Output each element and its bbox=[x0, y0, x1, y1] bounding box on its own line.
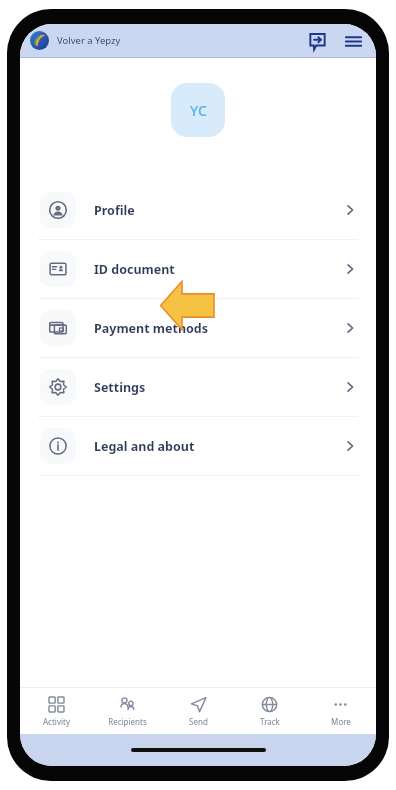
staticText: Send bbox=[189, 716, 208, 727]
button[interactable]: Activity bbox=[20, 688, 92, 734]
button[interactable]: Send bbox=[163, 688, 234, 734]
staticText: Profile bbox=[94, 202, 135, 219]
button[interactable]: Messages bbox=[304, 28, 330, 54]
button[interactable]: Menu bbox=[340, 28, 366, 54]
staticText: Track bbox=[260, 716, 280, 727]
button[interactable]: ID document bbox=[38, 240, 358, 298]
staticText: Recipients bbox=[108, 716, 147, 727]
button[interactable]: Legal and about bbox=[38, 417, 358, 475]
button[interactable]: Profile bbox=[38, 181, 358, 239]
staticText: Volver a Yepzy bbox=[57, 34, 121, 47]
staticText: Settings bbox=[94, 379, 146, 396]
button[interactable]: Settings bbox=[38, 358, 358, 416]
button[interactable]: More bbox=[305, 688, 376, 734]
staticText: Activity bbox=[43, 716, 70, 727]
staticText: Legal and about bbox=[94, 438, 195, 455]
button[interactable]: Track bbox=[234, 688, 305, 734]
staticText: YC bbox=[190, 101, 207, 120]
button[interactable]: Yepzy logo bbox=[30, 31, 49, 50]
staticText: ID document bbox=[94, 261, 175, 278]
button[interactable]: Payment methods bbox=[38, 299, 358, 357]
button[interactable]: YC bbox=[171, 83, 225, 137]
staticText: More bbox=[331, 716, 351, 727]
button[interactable]: Recipients bbox=[92, 688, 163, 734]
staticText: Payment methods bbox=[94, 320, 209, 337]
